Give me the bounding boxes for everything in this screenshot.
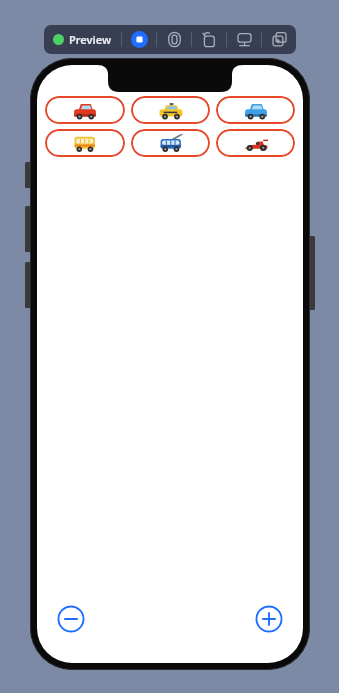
button[interactable]: Remove xyxy=(57,605,85,633)
button[interactable]: Trolleybus xyxy=(131,129,210,157)
button[interactable]: Bus xyxy=(45,129,125,157)
button[interactable]: Rotate xyxy=(192,25,226,54)
button[interactable]: Car xyxy=(45,96,125,124)
button[interactable]: Add xyxy=(255,605,283,633)
button[interactable]: Inspect xyxy=(227,25,261,54)
button[interactable]: Blue car xyxy=(216,96,295,124)
button[interactable]: Preview xyxy=(44,25,121,54)
button[interactable]: Stop xyxy=(122,25,156,54)
staticText: Preview xyxy=(69,32,112,47)
button[interactable]: Racing car xyxy=(216,129,295,157)
button[interactable]: Duplicate xyxy=(262,25,296,54)
button[interactable]: Taxi xyxy=(131,96,210,124)
button[interactable]: Device xyxy=(157,25,191,54)
